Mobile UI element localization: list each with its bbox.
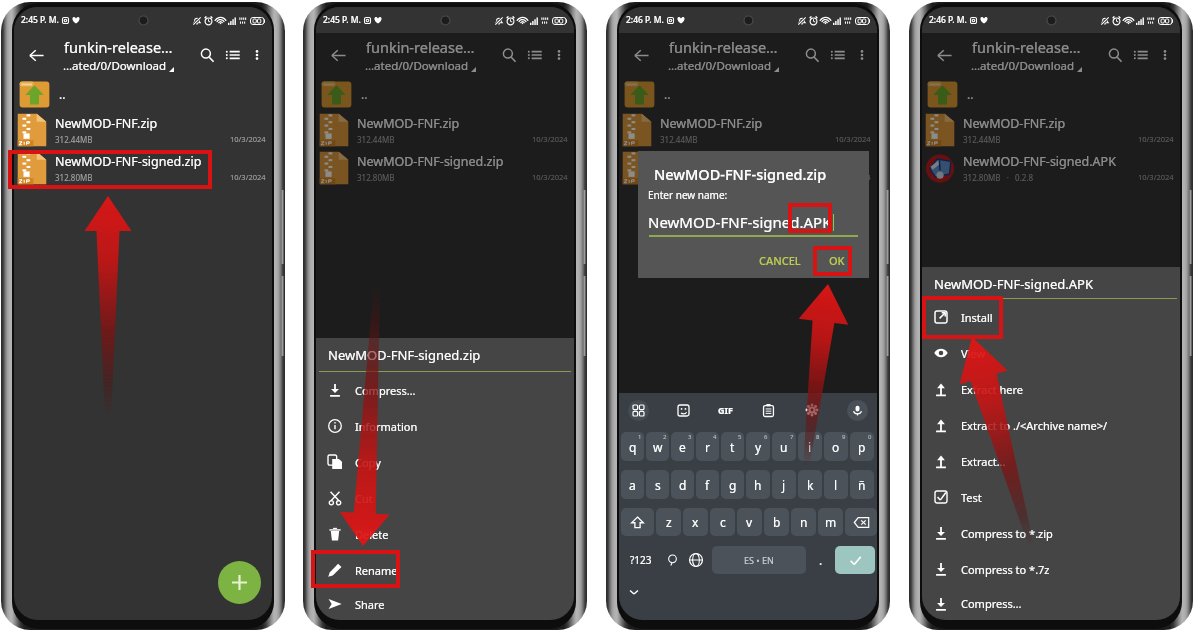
button[interactable]: .. xyxy=(14,77,272,111)
button[interactable]: OK xyxy=(821,250,853,271)
button[interactable]: z xyxy=(656,508,681,536)
button[interactable]: i xyxy=(798,432,822,461)
button[interactable]: t xyxy=(721,432,744,461)
button[interactable]: q xyxy=(621,432,644,461)
button[interactable]: NewMOD-FNF.zip xyxy=(922,111,1180,149)
button[interactable]: Extract here xyxy=(922,371,1180,407)
button[interactable]: Search xyxy=(194,42,220,68)
button[interactable]: Language xyxy=(683,546,709,574)
button[interactable]: ES • EN xyxy=(712,546,806,574)
button[interactable]: Search xyxy=(799,42,825,68)
button[interactable]: e xyxy=(671,432,694,461)
button[interactable]: NewMOD-FNF.zip xyxy=(619,111,877,149)
button[interactable]: k xyxy=(798,470,822,499)
button[interactable]: g xyxy=(721,470,744,499)
button[interactable]: NewMOD-FNF-signed.zip xyxy=(14,149,272,187)
button[interactable]: a xyxy=(621,470,644,499)
button[interactable]: Back xyxy=(24,43,48,67)
staticText: 10/3/2024 xyxy=(230,134,266,144)
button[interactable]: Copy xyxy=(316,444,574,480)
button[interactable]: Enter xyxy=(835,546,875,574)
staticText: …ated/0/Download xyxy=(971,58,1075,74)
button[interactable]: h xyxy=(746,470,770,499)
button[interactable]: CANCEL xyxy=(751,250,809,271)
button[interactable]: View mode xyxy=(522,42,548,68)
button[interactable] xyxy=(621,508,654,536)
button[interactable]: Back xyxy=(326,43,350,67)
button[interactable]: More options xyxy=(246,44,268,66)
button[interactable]: More options xyxy=(1154,44,1176,66)
button[interactable]: Compress to *.zip xyxy=(922,515,1180,551)
staticText: .. xyxy=(361,86,368,102)
button[interactable]: o xyxy=(824,432,848,461)
button[interactable]: View mode xyxy=(1128,42,1154,68)
button[interactable]: View xyxy=(922,335,1180,371)
button[interactable]: NewMOD-FNF-signed.APK xyxy=(922,149,1180,187)
button[interactable]: Settings xyxy=(803,401,821,419)
button[interactable]: c xyxy=(710,508,735,536)
button[interactable]: Extract… xyxy=(922,443,1180,479)
button[interactable]: b xyxy=(764,508,789,536)
button[interactable]: m xyxy=(818,508,843,536)
button[interactable]: p xyxy=(850,432,874,461)
button[interactable]: Compress to *.7z xyxy=(922,551,1180,587)
button[interactable]: Delete xyxy=(316,516,574,552)
button[interactable]: NewMOD-FNF.zip xyxy=(14,111,272,149)
staticText: Compress to *.7z xyxy=(961,562,1050,577)
button[interactable]: j xyxy=(772,470,796,499)
button[interactable]: View mode xyxy=(825,42,851,68)
button[interactable]: Compress… xyxy=(316,372,574,408)
button[interactable]: ñ xyxy=(850,470,874,499)
button[interactable]: l xyxy=(824,470,848,499)
staticText: …ated/0/Download xyxy=(365,58,469,74)
button[interactable]: Test xyxy=(922,479,1180,515)
button[interactable]: Extract to ./<Archive name>/ xyxy=(922,407,1180,443)
button[interactable]: Information xyxy=(316,408,574,444)
button[interactable]: v xyxy=(737,508,762,536)
button[interactable]: NewMOD-FNF-signed.zip xyxy=(619,149,877,187)
button[interactable]: n xyxy=(791,508,816,536)
button[interactable]: r xyxy=(696,432,719,461)
button[interactable]: Emoji xyxy=(661,546,683,574)
button[interactable]: .. xyxy=(316,77,574,111)
staticText: Enter new name: xyxy=(648,188,728,202)
button[interactable]: u xyxy=(772,432,796,461)
button[interactable]: Add xyxy=(218,561,261,604)
button[interactable]: s xyxy=(646,470,669,499)
button[interactable]: d xyxy=(671,470,694,499)
button[interactable]: f xyxy=(696,470,719,499)
staticText: …ated/0/Download xyxy=(63,58,167,74)
button[interactable]: Back xyxy=(629,43,653,67)
staticText: z xyxy=(666,514,672,530)
button[interactable]: Cut xyxy=(316,480,574,516)
button[interactable] xyxy=(845,508,877,536)
button[interactable]: Apps xyxy=(628,400,649,421)
button[interactable]: GIF xyxy=(718,404,733,416)
button[interactable]: .. xyxy=(619,77,877,111)
button[interactable]: Share xyxy=(316,588,574,620)
button[interactable]: More options xyxy=(548,44,570,66)
staticText: Extract to ./<Archive name>/ xyxy=(961,418,1108,433)
button[interactable]: Clipboard xyxy=(759,401,777,419)
button[interactable]: Search xyxy=(1102,42,1128,68)
button[interactable]: ?123 xyxy=(621,546,661,574)
button[interactable]: Stickers xyxy=(674,401,692,419)
button[interactable]: Search xyxy=(496,42,522,68)
button[interactable]: . xyxy=(809,546,833,574)
button[interactable]: y xyxy=(746,432,770,461)
button[interactable]: NewMOD-FNF.zip xyxy=(316,111,574,149)
button[interactable]: Voice input xyxy=(847,400,868,421)
button[interactable]: Compress… xyxy=(922,587,1180,620)
button[interactable]: Install xyxy=(922,299,1180,335)
staticText: 312.80MB xyxy=(55,172,93,183)
staticText: OK xyxy=(829,253,845,268)
button[interactable]: Back xyxy=(932,43,956,67)
staticText: NewMOD-FNF-signed.APK xyxy=(934,275,1093,293)
button[interactable]: .. xyxy=(922,77,1180,111)
button[interactable]: Rename xyxy=(316,552,574,588)
button[interactable]: View mode xyxy=(220,42,246,68)
button[interactable]: x xyxy=(683,508,708,536)
button[interactable]: NewMOD-FNF-signed.zip xyxy=(316,149,574,187)
button[interactable]: More options xyxy=(851,44,873,66)
button[interactable]: w xyxy=(646,432,669,461)
